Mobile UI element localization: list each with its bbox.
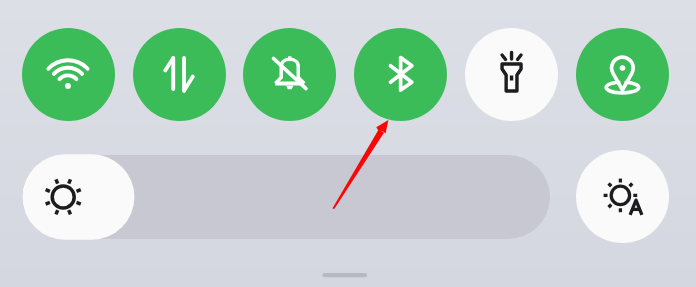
button[interactable]: Mobile data [133,28,226,121]
button[interactable]: Flashlight [465,28,558,121]
button[interactable]: Brightness [22,155,550,239]
button[interactable]: Auto brightness [576,150,669,243]
button[interactable]: Location [576,28,669,121]
button[interactable]: Bluetooth [354,28,447,121]
button[interactable]: Wi-Fi [22,28,115,121]
button[interactable]: Mute [243,28,336,121]
